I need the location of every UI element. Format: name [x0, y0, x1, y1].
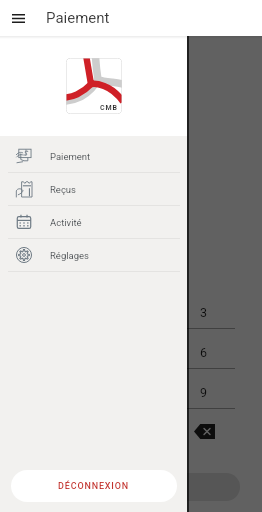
staticText: Paiement: [46, 9, 110, 27]
staticText: Réglages: [50, 250, 89, 261]
staticText: Reçus: [50, 184, 77, 195]
staticText: 6: [200, 345, 208, 360]
button[interactable]: 9: [172, 369, 235, 409]
button[interactable]: Open navigation menu: [0, 0, 36, 36]
button[interactable]: Backspace: [194, 424, 215, 439]
staticText: Paiement: [50, 151, 91, 162]
button[interactable]: VALIDER: [22, 473, 240, 501]
button[interactable]: Réglages: [0, 239, 187, 271]
button[interactable]: 6: [172, 329, 235, 369]
button[interactable]: DÉCONNEXION: [11, 470, 177, 502]
staticText: CMB: [100, 104, 118, 112]
staticText: DÉCONNEXION: [58, 481, 130, 492]
button[interactable]: Reçus: [0, 173, 187, 205]
staticText: VALIDER: [113, 482, 149, 493]
button[interactable]: Paiement: [0, 140, 187, 172]
staticText: 9: [200, 385, 208, 400]
button[interactable]: Activité: [0, 206, 187, 238]
staticText: Activité: [50, 217, 82, 228]
staticText: 3: [200, 305, 208, 320]
button[interactable]: 3: [172, 289, 235, 329]
